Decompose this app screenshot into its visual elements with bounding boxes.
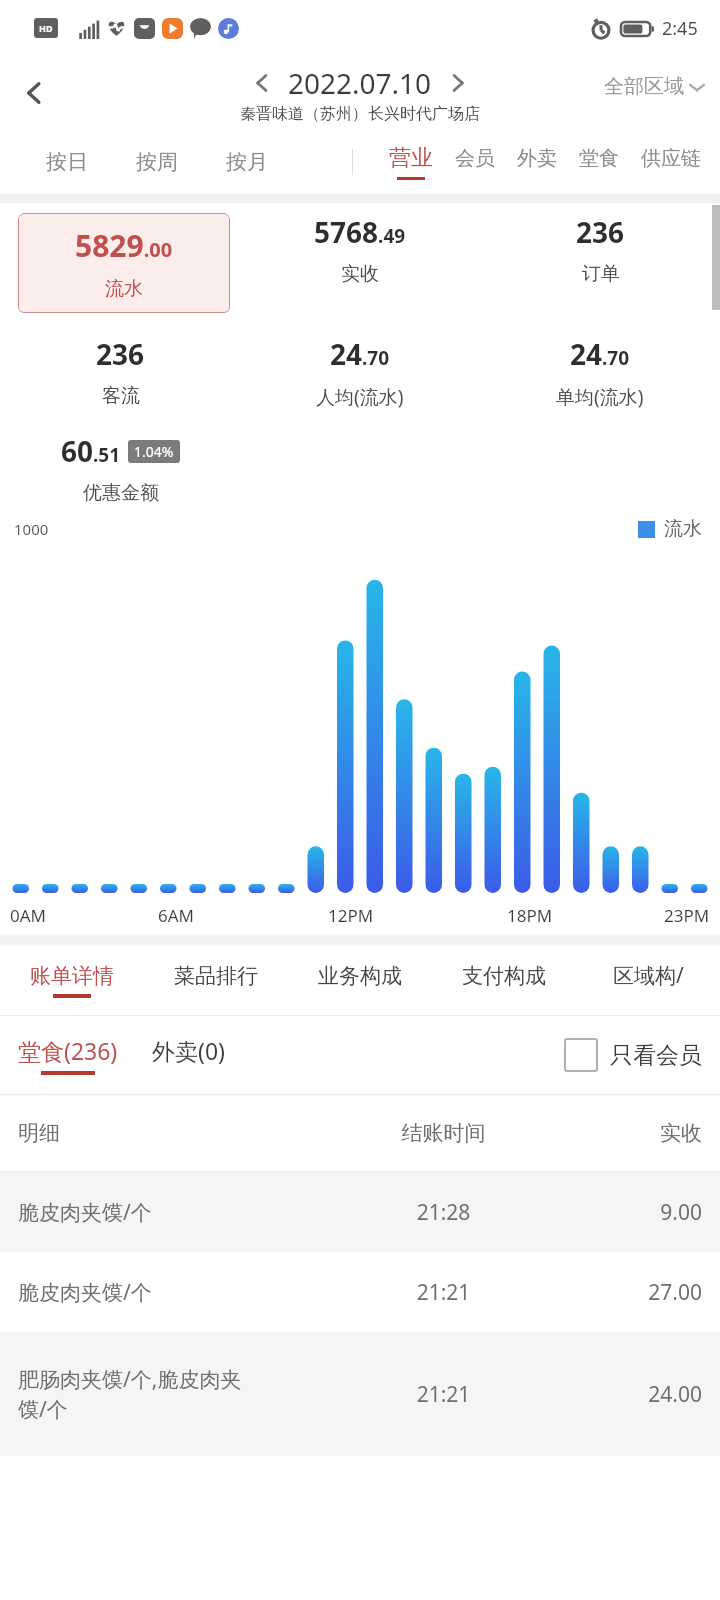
staticText: 会员 [455, 146, 495, 171]
staticText: 全部区域 [604, 74, 684, 99]
staticText: 堂食(236) [18, 1035, 118, 1066]
staticText: 外卖 [517, 146, 557, 171]
staticText: 支付构成 [462, 963, 546, 989]
staticText: 21:21 [340, 1278, 547, 1307]
staticText: 外卖(0) [152, 1035, 225, 1066]
staticText: 2:45 [662, 16, 698, 41]
staticText: 肥肠肉夹馍/个,脆皮肉夹 馍/个 [18, 1365, 340, 1424]
staticText: 24.70 [330, 335, 390, 373]
button[interactable]: 24.70 [480, 335, 720, 410]
staticText: 业务构成 [318, 963, 402, 989]
staticText: 明细 [18, 1120, 340, 1146]
button[interactable]: 肥肠肉夹馍/个,脆皮肉夹 馍/个 [0, 1332, 720, 1456]
staticText: 结账时间 [340, 1120, 547, 1146]
staticText: 只看会员 [610, 1041, 702, 1070]
staticText: 流水 [664, 517, 702, 541]
staticText: 2022.07.10 [288, 64, 432, 102]
button[interactable]: Back [10, 69, 58, 117]
staticText: 优惠金额 [83, 481, 159, 505]
staticText: 单均(流水) [556, 384, 644, 410]
staticText: 24.70 [570, 335, 630, 373]
button[interactable]: 营业 [389, 130, 433, 194]
staticText: 23PM [664, 904, 710, 927]
button[interactable]: 236 [480, 213, 720, 286]
button[interactable]: Previous day [242, 63, 282, 103]
button[interactable]: 脆皮肉夹馍/个 [0, 1172, 720, 1252]
staticText: 客流 [102, 384, 140, 408]
staticText: 18PM [507, 904, 553, 927]
button[interactable]: 供应链 [641, 130, 701, 194]
staticText: 菜品排行 [174, 963, 258, 989]
button[interactable]: 业务构成 [288, 945, 432, 1015]
button[interactable]: 5829.00 [18, 213, 230, 313]
button[interactable]: 堂食(236) [18, 1035, 118, 1075]
staticText: 236 [96, 335, 145, 373]
button[interactable]: 支付构成 [432, 945, 576, 1015]
staticText: 0AM [10, 904, 47, 927]
button[interactable]: 外卖 [517, 130, 557, 194]
staticText: 按周 [136, 149, 178, 175]
staticText: 脆皮肉夹馍/个 [18, 1198, 340, 1227]
staticText: 236 [576, 213, 625, 251]
button[interactable]: 外卖(0) [152, 1035, 225, 1075]
staticText: HD [39, 22, 53, 34]
staticText: 营业 [389, 144, 433, 172]
button[interactable]: 只看会员 [564, 1038, 702, 1072]
staticText: 24.00 [547, 1380, 702, 1409]
staticText: 秦晋味道（苏州）长兴时代广场店 [240, 104, 480, 124]
staticText: 5768.49 [314, 213, 406, 251]
staticText: 区域构/ [613, 961, 684, 990]
button[interactable]: 脆皮肉夹馍/个 [0, 1252, 720, 1332]
staticText: 脆皮肉夹馍/个 [18, 1278, 340, 1307]
staticText: 实收 [341, 262, 379, 286]
staticText: 订单 [582, 262, 620, 286]
staticText: 9.00 [547, 1198, 702, 1227]
staticText: 堂食 [579, 146, 619, 171]
button[interactable]: 按日 [22, 130, 112, 194]
staticText: 21:28 [340, 1198, 547, 1227]
button[interactable]: 24.70 [240, 335, 480, 410]
staticText: 按日 [46, 149, 88, 175]
button[interactable]: 菜品排行 [144, 945, 288, 1015]
staticText: 27.00 [547, 1278, 702, 1307]
button[interactable]: 会员 [455, 130, 495, 194]
button[interactable]: 账单详情 [0, 945, 144, 1015]
staticText: 账单详情 [30, 963, 114, 989]
staticText: 12PM [328, 904, 374, 927]
button[interactable]: Next day [438, 63, 478, 103]
button[interactable]: 堂食 [579, 130, 619, 194]
button[interactable]: 按周 [112, 130, 202, 194]
staticText: 60.51 [61, 432, 121, 470]
staticText: 按月 [226, 149, 268, 175]
staticText: 5829.00 [75, 225, 173, 266]
staticText: 1.04% [134, 442, 174, 461]
staticText: 21:21 [340, 1380, 547, 1409]
button[interactable]: 5768.49 [240, 213, 480, 286]
staticText: 实收 [547, 1120, 702, 1146]
button[interactable]: 按月 [202, 130, 292, 194]
staticText: 1000 [14, 519, 49, 539]
button[interactable]: 区域构/ [576, 945, 720, 1015]
staticText: 人均(流水) [316, 384, 404, 410]
staticText: 供应链 [641, 146, 701, 171]
staticText: 流水 [105, 277, 143, 301]
staticText: 6AM [158, 904, 195, 927]
button[interactable]: 236 [0, 335, 240, 408]
button[interactable]: 全部区域 [604, 74, 706, 99]
